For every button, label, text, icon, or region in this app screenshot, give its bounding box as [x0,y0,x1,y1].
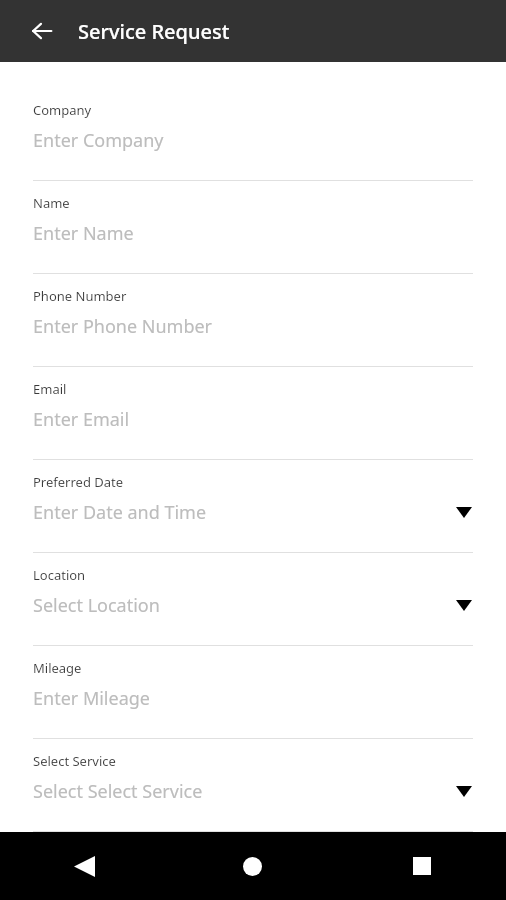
button[interactable]: Phone Number [33,274,473,367]
staticText: Mileage [33,659,82,677]
staticText: Company [33,101,92,119]
button[interactable]: Email [33,367,473,460]
staticText: Select Location [33,593,456,618]
button[interactable]: Navigate up [18,7,66,55]
staticText: Name [33,194,70,212]
staticText: Select Select Service [33,779,456,804]
button[interactable]: Mileage [33,646,473,739]
button[interactable]: Select Service [33,739,473,832]
button[interactable]: Recent apps [337,832,506,900]
staticText: Enter Name [33,221,473,246]
button[interactable]: Preferred Date [33,460,473,553]
staticText: Service Request [78,18,230,45]
staticText: Preferred Date [33,473,124,491]
button[interactable]: Home [168,832,337,900]
staticText: Enter Phone Number [33,314,473,339]
button[interactable]: Back [0,832,168,900]
staticText: Enter Company [33,128,473,153]
staticText: Phone Number [33,287,127,305]
staticText: Enter Mileage [33,686,473,711]
staticText: Enter Email [33,407,473,432]
staticText: Email [33,380,67,398]
button[interactable]: Name [33,181,473,274]
staticText: Enter Date and Time [33,500,456,525]
staticText: Location [33,566,86,584]
button[interactable]: Company [33,88,473,181]
button[interactable]: Location [33,553,473,646]
staticText: Select Service [33,752,116,770]
